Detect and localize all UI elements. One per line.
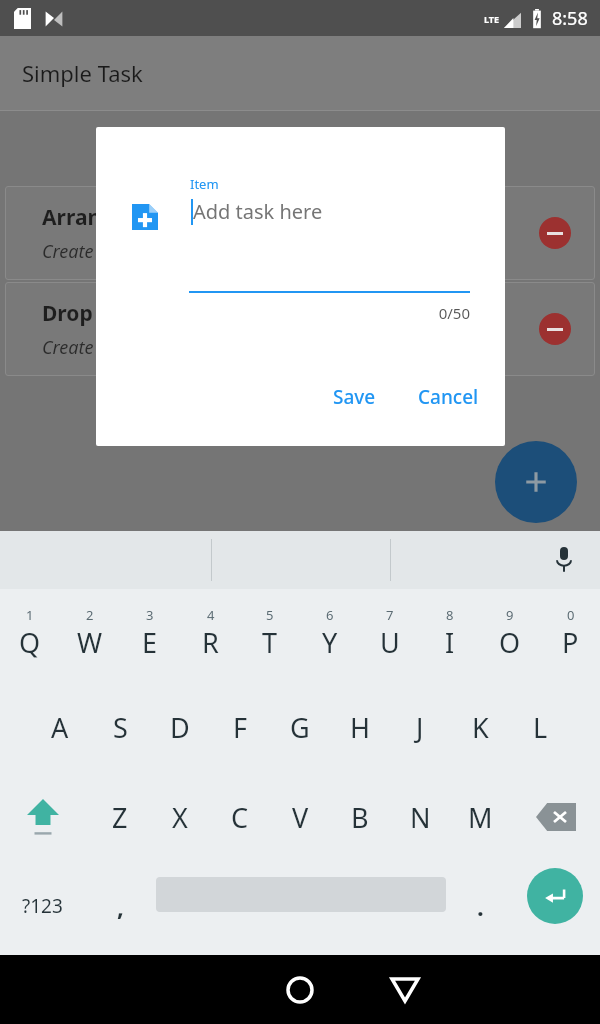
staticText: 4 <box>207 606 215 624</box>
button[interactable]: Arrange room <box>5 186 595 280</box>
button[interactable]: 3 <box>120 589 180 677</box>
button[interactable]: V <box>270 779 330 855</box>
staticText: Arrange room <box>42 203 189 232</box>
staticText: W <box>77 624 103 661</box>
button[interactable]: 5 <box>240 589 300 677</box>
staticText: B <box>351 799 369 836</box>
button[interactable]: Home <box>286 976 314 1004</box>
button[interactable]: H <box>330 689 390 765</box>
staticText: Create space <box>42 335 144 360</box>
staticText: Y <box>322 624 338 661</box>
button[interactable]: Voice input <box>544 540 584 580</box>
staticText: 0/50 <box>189 303 470 323</box>
staticText: Q <box>19 624 41 661</box>
staticText: G <box>290 709 310 746</box>
button[interactable]: B <box>330 779 390 855</box>
staticText: F <box>233 709 248 746</box>
button[interactable]: D <box>150 689 210 765</box>
button[interactable]: Z <box>90 779 150 855</box>
staticText: R <box>202 624 219 661</box>
staticText: LTE <box>484 13 500 25</box>
button[interactable]: 8 <box>420 589 480 677</box>
staticText: Simple Task <box>22 58 143 88</box>
staticText: J <box>416 709 424 746</box>
staticText: Z <box>112 799 128 836</box>
button[interactable]: Remove task <box>539 217 571 249</box>
staticText: S <box>113 709 128 746</box>
staticText: X <box>172 799 188 836</box>
staticText: 8 <box>446 606 454 624</box>
button[interactable]: 9 <box>480 589 540 677</box>
button[interactable]: 7 <box>360 589 420 677</box>
button[interactable]: 2 <box>60 589 120 677</box>
button[interactable]: G <box>270 689 330 765</box>
button[interactable]: F <box>210 689 270 765</box>
staticText: N <box>410 799 431 836</box>
staticText: ?123 <box>22 893 63 919</box>
button[interactable]: . <box>455 867 505 945</box>
staticText: L <box>533 709 548 746</box>
button[interactable]: Shift <box>3 779 83 855</box>
button[interactable]: L <box>510 689 570 765</box>
button[interactable]: Add task <box>495 441 577 523</box>
button[interactable]: ?123 <box>3 867 81 945</box>
staticText: 7 <box>386 606 394 624</box>
staticText: K <box>472 709 489 746</box>
staticText: 0 <box>567 606 575 624</box>
staticText: , <box>117 890 124 923</box>
staticText: 8:58 <box>552 6 588 31</box>
button[interactable]: Enter <box>527 868 583 924</box>
staticText: O <box>499 624 521 661</box>
button[interactable]: Delete <box>518 779 594 855</box>
staticText: Create space <box>42 239 144 264</box>
staticText: Add task here <box>193 198 323 225</box>
button[interactable]: 1 <box>0 589 60 677</box>
staticText: M <box>468 799 493 836</box>
button[interactable]: X <box>150 779 210 855</box>
staticText: V <box>292 799 309 836</box>
staticText: 2 <box>86 606 94 624</box>
staticText: H <box>350 709 371 746</box>
button[interactable]: C <box>210 779 270 855</box>
button[interactable]: 4 <box>180 589 240 677</box>
button[interactable]: S <box>90 689 150 765</box>
button[interactable]: Save <box>329 380 380 414</box>
staticText: Drop trash <box>42 299 154 328</box>
staticText: I <box>445 624 455 661</box>
staticText: 3 <box>146 606 154 624</box>
staticText: E <box>142 624 158 661</box>
button[interactable]: 6 <box>300 589 360 677</box>
staticText: U <box>380 624 400 661</box>
staticText: A <box>51 709 69 746</box>
staticText: Item <box>190 175 219 193</box>
button[interactable]: N <box>390 779 450 855</box>
button[interactable]: , <box>95 867 145 945</box>
staticText: P <box>562 624 579 661</box>
staticText: 1 <box>26 606 34 624</box>
button[interactable]: A <box>30 689 90 765</box>
staticText: T <box>262 624 278 661</box>
button[interactable]: Drop trash <box>5 282 595 376</box>
staticText: Cancel <box>418 384 479 410</box>
button[interactable]: 0 <box>540 589 600 677</box>
button[interactable]: K <box>450 689 510 765</box>
staticText: 5 <box>266 606 274 624</box>
staticText: D <box>170 709 190 746</box>
staticText: 6 <box>326 606 334 624</box>
button[interactable]: J <box>390 689 450 765</box>
staticText: C <box>231 799 249 836</box>
staticText: Save <box>333 384 376 410</box>
button[interactable]: Cancel <box>414 380 483 414</box>
button[interactable]: Remove task <box>539 313 571 345</box>
staticText: 9 <box>506 606 514 624</box>
button[interactable]: Back <box>105 955 600 1024</box>
staticText: . <box>477 890 484 923</box>
button[interactable]: M <box>450 779 510 855</box>
